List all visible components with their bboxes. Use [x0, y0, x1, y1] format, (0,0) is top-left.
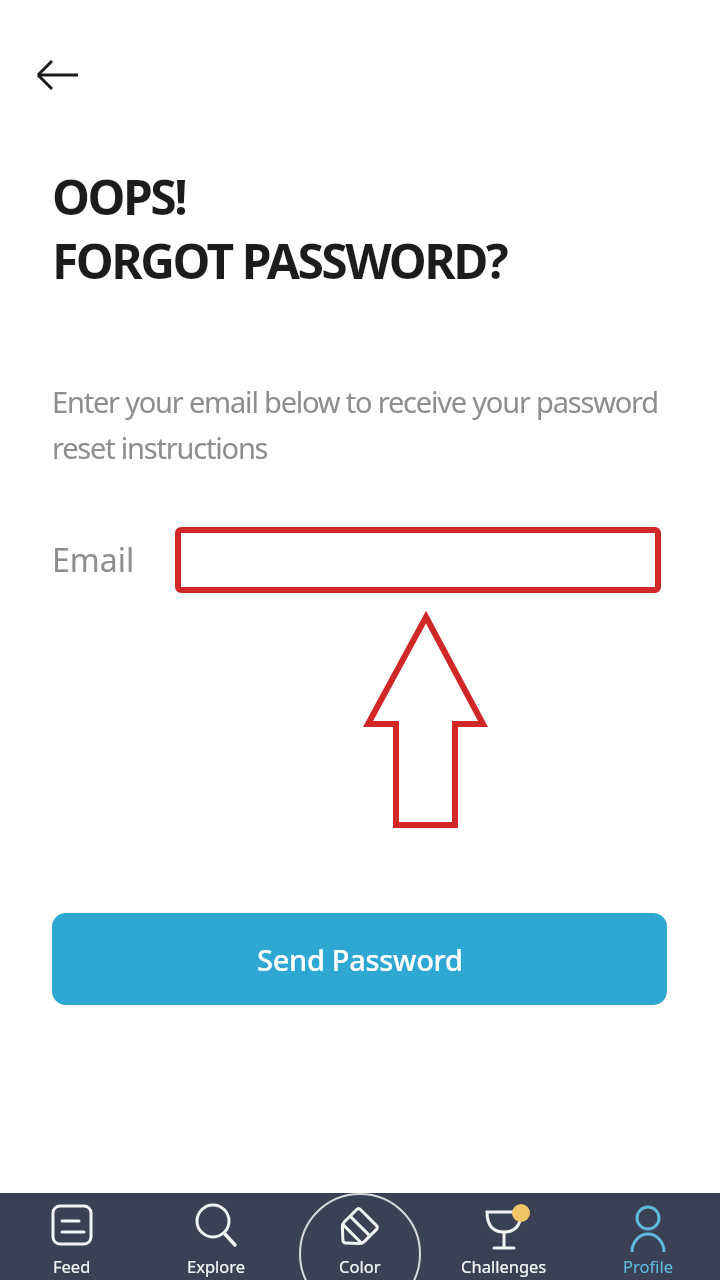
- button[interactable]: Explore: [144, 1193, 288, 1280]
- button[interactable]: Color: [288, 1193, 432, 1280]
- staticText: Enter your email below to receive your p…: [52, 382, 658, 468]
- staticText: Color: [339, 1255, 381, 1277]
- staticText: Challenges: [461, 1255, 547, 1277]
- staticText: Profile: [623, 1255, 673, 1277]
- staticText: Explore: [187, 1255, 246, 1277]
- staticText: Email: [52, 538, 135, 582]
- staticText: Feed: [53, 1255, 91, 1277]
- button[interactable]: [26, 55, 88, 97]
- staticText: OOPS!: [52, 164, 186, 229]
- button[interactable]: [175, 527, 661, 593]
- button[interactable]: Profile: [576, 1193, 720, 1280]
- staticText: Send Password: [257, 940, 463, 979]
- staticText: FORGOT PASSWORD?: [52, 228, 507, 293]
- button[interactable]: Send Password: [52, 913, 667, 1005]
- button[interactable]: Challenges: [432, 1193, 576, 1280]
- button[interactable]: Feed: [0, 1193, 144, 1280]
